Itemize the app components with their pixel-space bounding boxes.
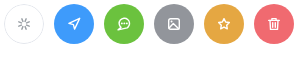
button[interactable]: Messages	[104, 4, 144, 44]
button[interactable]: Delete	[254, 4, 294, 44]
button[interactable]: Photos	[154, 4, 194, 44]
button[interactable]: Favourite	[204, 4, 244, 44]
button[interactable]: Loading	[4, 4, 44, 44]
button[interactable]: Send	[54, 4, 94, 44]
